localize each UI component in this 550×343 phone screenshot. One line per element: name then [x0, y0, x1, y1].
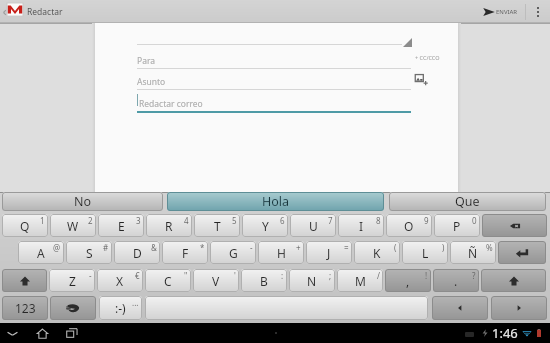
staticText: . [454, 273, 458, 289]
staticText: 5 [232, 215, 237, 226]
staticText: 8 [376, 215, 381, 226]
staticText: N [307, 273, 317, 289]
button[interactable]: N [289, 269, 335, 292]
button[interactable]: I [338, 214, 384, 237]
button[interactable]: Asunto [137, 67, 411, 90]
button[interactable]: C [145, 269, 191, 292]
staticText: M [355, 273, 366, 289]
button[interactable]: ENVIAR [481, 0, 525, 24]
staticText: E [118, 218, 125, 234]
staticText: 6 [280, 215, 285, 226]
button[interactable]: U [290, 214, 336, 237]
button[interactable]: , [385, 269, 431, 292]
staticText: Ñ [468, 245, 478, 261]
button[interactable]: P [434, 214, 480, 237]
button[interactable]: W [50, 214, 96, 237]
staticText: " [184, 270, 188, 281]
staticText: * [200, 242, 205, 253]
button[interactable]: Attach picture [415, 73, 428, 86]
button[interactable]: L [402, 241, 448, 264]
button[interactable]: G [210, 241, 256, 264]
button[interactable]: Q [2, 214, 48, 237]
button[interactable]: S [66, 241, 112, 264]
staticText: Hola [262, 193, 290, 210]
button[interactable]: Home [33, 324, 51, 342]
button[interactable]: O [386, 214, 432, 237]
staticText: - [250, 242, 253, 253]
button[interactable]: More options [526, 0, 550, 24]
staticText: W [67, 218, 79, 234]
staticText: Que [455, 193, 480, 210]
button[interactable]: X [97, 269, 143, 292]
staticText: V [212, 273, 220, 289]
staticText: I [359, 218, 364, 234]
button[interactable]: B [241, 269, 287, 292]
button[interactable]: Redactar correo [137, 89, 411, 113]
staticText: G [229, 245, 238, 261]
staticText: H [277, 245, 286, 261]
staticText: 9 [424, 215, 429, 226]
staticText: % [486, 242, 493, 253]
button[interactable]: Shift [481, 269, 546, 292]
staticText: X [116, 273, 124, 289]
button[interactable]: Shift [2, 269, 47, 292]
button[interactable]: V [193, 269, 239, 292]
staticText: L [422, 245, 429, 261]
button[interactable]: 123 [2, 296, 48, 320]
staticText: :-) [115, 300, 126, 316]
button[interactable]: Space [145, 296, 428, 320]
staticText: 3 [136, 215, 141, 226]
staticText: F [182, 245, 189, 261]
button[interactable]: Enter [498, 241, 546, 264]
button[interactable]: H [258, 241, 304, 264]
staticText: Redactar correo [139, 98, 203, 110]
staticText: D [133, 245, 142, 261]
button[interactable]: Move cursor left [432, 296, 488, 320]
staticText: & [151, 242, 157, 253]
staticText: ( [394, 242, 397, 253]
button[interactable]: R [146, 214, 192, 237]
staticText: 2 [88, 215, 93, 226]
button[interactable]: Que [389, 192, 546, 211]
button[interactable]: Recent apps [63, 324, 81, 342]
staticText: K [373, 245, 381, 261]
button[interactable]: D [114, 241, 160, 264]
button[interactable]: Y [242, 214, 288, 237]
button[interactable]: Backspace [482, 214, 547, 237]
button[interactable]: Hola [167, 192, 384, 211]
button[interactable]: J [306, 241, 352, 264]
staticText: 4 [184, 215, 189, 226]
button[interactable]: No [2, 192, 163, 211]
staticText: J [327, 245, 331, 261]
staticText: S [86, 245, 93, 261]
button[interactable]: F [162, 241, 208, 264]
staticText: ENVIAR [496, 8, 518, 16]
button[interactable]: M [337, 269, 383, 292]
staticText: A [37, 245, 45, 261]
button[interactable]: K [354, 241, 400, 264]
staticText: 1:46 [492, 324, 518, 342]
button[interactable]: Navigate up [0, 0, 70, 24]
staticText: = [344, 242, 349, 253]
button[interactable]: A [18, 241, 64, 264]
staticText: U [309, 218, 318, 234]
button[interactable]: T [194, 214, 240, 237]
staticText: 0 [472, 215, 477, 226]
button[interactable]: Z [49, 269, 95, 292]
button[interactable]: E [98, 214, 144, 237]
staticText: Q [20, 218, 30, 234]
staticText: Y [262, 218, 269, 234]
button[interactable]: Para [137, 47, 411, 69]
staticText: # [103, 242, 109, 253]
staticText: 1 [40, 215, 45, 226]
button[interactable]: Move cursor right [491, 296, 547, 320]
staticText: P [453, 218, 461, 234]
button[interactable]: . [433, 269, 479, 292]
staticText: B [260, 273, 268, 289]
button[interactable]: Hide keyboard [3, 324, 21, 342]
staticText: - [89, 270, 92, 281]
button[interactable]: Ñ [450, 241, 496, 264]
button[interactable]: Space [50, 296, 96, 320]
button[interactable]: :-) [99, 296, 142, 320]
staticText: R [165, 218, 173, 234]
